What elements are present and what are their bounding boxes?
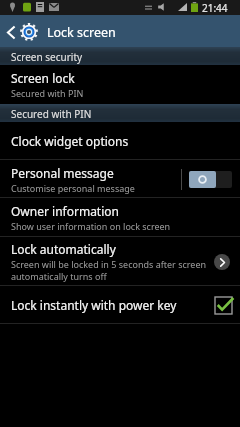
button[interactable]: Personal message on/off <box>189 171 232 188</box>
staticText: Personal message <box>11 165 114 181</box>
staticText: Screen security <box>11 50 83 64</box>
staticText: Show user information on lock screen <box>11 220 171 232</box>
button[interactable]: Clock widget options <box>0 122 240 160</box>
button[interactable]: Owner information <box>0 198 240 237</box>
staticText: 21:44 <box>202 1 228 15</box>
staticText: Screen lock <box>11 70 75 86</box>
staticText: Clock widget options <box>11 133 129 149</box>
button[interactable]: Personal message <box>0 160 240 198</box>
button[interactable]: Screen lock <box>0 65 240 104</box>
button[interactable]: Lock automatically options <box>214 254 230 270</box>
staticText: Lock screen <box>47 24 116 41</box>
staticText: Customise personal message <box>11 182 135 194</box>
staticText: Lock automatically <box>11 241 116 257</box>
staticText: Secured with PIN <box>11 87 84 99</box>
staticText: Lock instantly with power key <box>11 297 177 313</box>
button[interactable]: Lock instantly with power key checkbox <box>215 297 232 314</box>
staticText: Secured with PIN <box>11 107 92 121</box>
button[interactable]: Lock automatically <box>0 237 240 286</box>
staticText: Owner information <box>11 203 119 219</box>
button[interactable]: Lock instantly with power key <box>0 286 240 324</box>
button[interactable]: Navigate up <box>4 19 18 45</box>
staticText: Screen will be locked in 5 seconds after… <box>11 258 207 282</box>
